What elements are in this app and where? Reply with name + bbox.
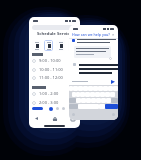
staticText: ×	[112, 32, 115, 37]
button[interactable]	[108, 86, 113, 91]
button[interactable]	[96, 98, 101, 103]
staticText: 9:00 - 10:00	[39, 58, 61, 63]
button[interactable]	[81, 98, 86, 103]
button[interactable]	[110, 92, 115, 97]
button[interactable]	[32, 40, 41, 51]
staticText: 11:00 - 12:00	[39, 75, 63, 80]
button[interactable]: 2:00 - 3:00	[32, 99, 77, 106]
button[interactable]	[44, 40, 53, 51]
staticText: 1:00 - 2:00	[39, 91, 59, 96]
button[interactable]	[113, 86, 118, 91]
button[interactable]: 1:00 - 2:00	[32, 90, 77, 97]
button[interactable]	[85, 92, 90, 97]
button[interactable]	[83, 86, 88, 91]
button[interactable]: 10:00 - 11:00	[32, 66, 77, 73]
staticText: How can we help you?	[72, 32, 110, 37]
button[interactable]	[90, 92, 95, 97]
button[interactable]	[105, 92, 110, 97]
button[interactable]	[32, 25, 77, 30]
button[interactable]	[69, 86, 73, 91]
button[interactable]	[88, 86, 93, 91]
button[interactable]	[86, 98, 91, 103]
button[interactable]	[56, 40, 65, 51]
button[interactable]: 9:00 - 10:00	[32, 57, 77, 64]
button[interactable]	[76, 98, 81, 103]
button[interactable]	[105, 104, 118, 109]
button[interactable]	[95, 92, 100, 97]
staticText: 2:00 - 3:00	[39, 100, 59, 105]
button[interactable]	[93, 86, 98, 91]
button[interactable]: Home	[52, 116, 57, 121]
button[interactable]	[98, 86, 103, 91]
button[interactable]	[99, 104, 105, 109]
button[interactable]: Send	[111, 80, 115, 84]
button[interactable]	[72, 92, 76, 97]
staticText: 10:00 - 11:00	[39, 67, 63, 72]
button[interactable]	[103, 86, 108, 91]
button[interactable]	[76, 92, 80, 97]
button[interactable]	[91, 98, 96, 103]
button[interactable]: How can we help you?	[72, 32, 115, 37]
button[interactable]	[100, 92, 105, 97]
button[interactable]: Recents	[70, 116, 75, 121]
button[interactable]: 11:00 - 12:00	[32, 74, 77, 81]
button[interactable]	[106, 98, 111, 103]
button[interactable]	[73, 86, 78, 91]
button[interactable]	[78, 86, 83, 91]
staticText: Schedule Service	[29, 31, 80, 37]
button[interactable]	[101, 98, 106, 103]
button[interactable]	[80, 92, 85, 97]
button[interactable]: Back	[34, 116, 39, 121]
button[interactable]	[68, 40, 77, 51]
